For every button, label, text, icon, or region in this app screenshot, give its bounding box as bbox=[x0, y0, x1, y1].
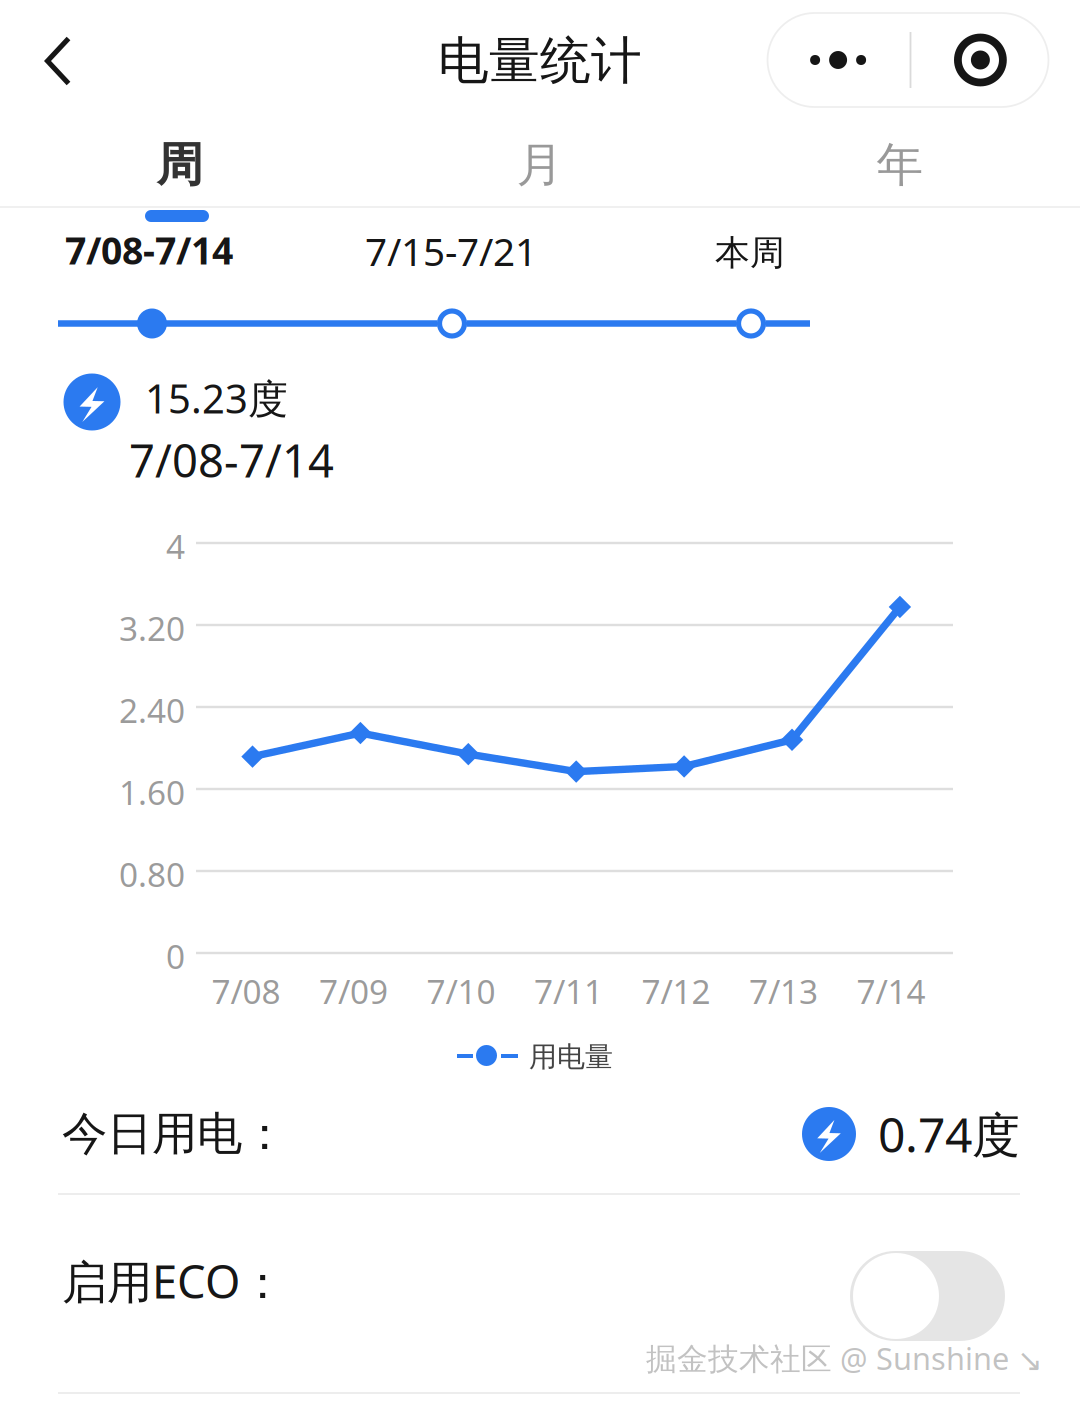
staticText: 7/08 bbox=[211, 969, 280, 1013]
button[interactable]: 启用ECO： bbox=[0, 1211, 1080, 1381]
button[interactable]: Back bbox=[8, 9, 108, 113]
staticText: 0.80 bbox=[119, 852, 185, 896]
staticText: 7/15-7/21 bbox=[365, 225, 537, 277]
staticText: 0 bbox=[166, 934, 185, 978]
button[interactable]: 月 bbox=[360, 121, 720, 209]
staticText: 7/09 bbox=[319, 969, 388, 1013]
staticText: 周 bbox=[156, 136, 203, 194]
staticText: 7/08-7/14 bbox=[129, 430, 334, 490]
staticText: 2.40 bbox=[119, 688, 185, 732]
staticText: 7/12 bbox=[641, 969, 710, 1013]
button[interactable]: More options bbox=[767, 13, 1048, 107]
staticText: 4 bbox=[166, 524, 185, 568]
staticText: 1.60 bbox=[119, 770, 185, 814]
staticText: 掘金技术社区 @ Sunshine ↘ bbox=[646, 1338, 1043, 1378]
staticText: 年 bbox=[876, 136, 923, 194]
staticText: 7/13 bbox=[749, 969, 818, 1013]
staticText: 7/14 bbox=[856, 969, 925, 1013]
staticText: 7/11 bbox=[534, 969, 603, 1013]
button[interactable]: 年 bbox=[720, 121, 1080, 209]
staticText: 用电量 bbox=[529, 1040, 613, 1074]
staticText: 15.23度 bbox=[145, 371, 288, 424]
staticText: 0.74度 bbox=[878, 1102, 1020, 1166]
button[interactable]: 周 bbox=[0, 121, 360, 209]
staticText: 7/10 bbox=[426, 969, 495, 1013]
staticText: 本周 bbox=[715, 232, 785, 274]
staticText: 7/08-7/14 bbox=[65, 225, 233, 275]
staticText: 电量统计 bbox=[438, 30, 642, 92]
staticText: 今日用电： bbox=[62, 1106, 287, 1162]
button[interactable]: 今日用电： bbox=[0, 1074, 1080, 1194]
staticText: 3.20 bbox=[119, 606, 185, 650]
staticText: 启用ECO： bbox=[62, 1251, 285, 1311]
staticText: 月 bbox=[516, 136, 563, 194]
